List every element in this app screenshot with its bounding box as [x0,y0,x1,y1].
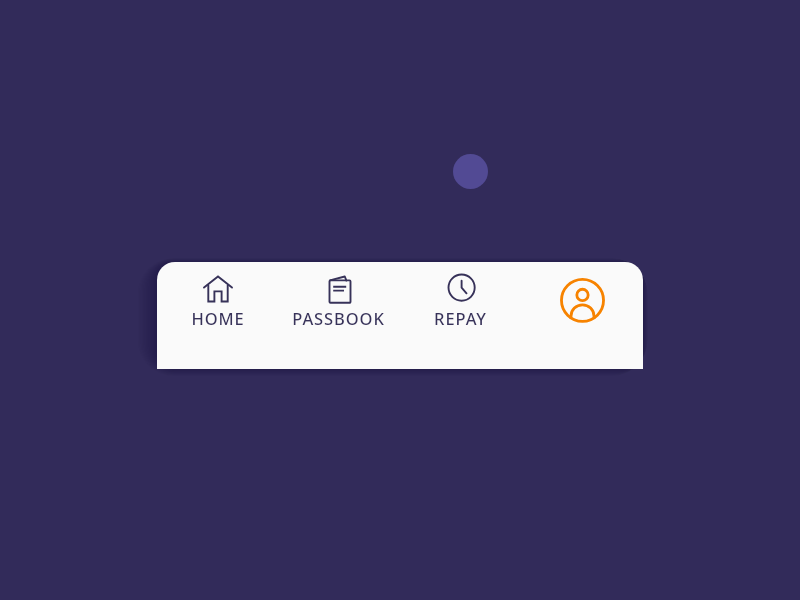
button[interactable]: Passbook [278,262,399,369]
staticText: HOME [191,307,245,329]
button[interactable]: Home [157,262,278,369]
staticText: PASSBOOK [292,307,385,329]
button[interactable]: Repay [399,262,521,369]
staticText: REPAY [434,307,487,329]
button[interactable]: Profile [521,262,643,369]
